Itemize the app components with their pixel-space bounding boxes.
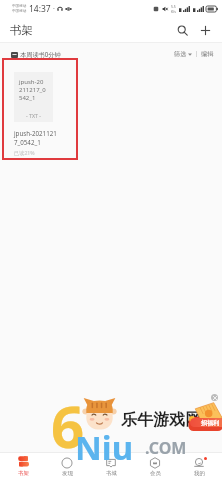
staticText: jpush-2021121 7_0542_1 [14,129,57,147]
staticText: 本周读书0分钟 [20,50,61,58]
button[interactable]: Search [171,19,193,41]
button[interactable]: 发现 [46,457,88,477]
button[interactable]: Promotion gift [186,398,222,434]
staticText: 中国移动 [12,4,27,9]
button[interactable]: 书城 [90,457,132,477]
staticText: K/s [171,9,176,14]
button[interactable]: 书架 [2,456,44,477]
button[interactable]: 我的 [178,457,220,477]
staticText: 乐牛游戏网 [121,410,201,430]
staticText: Niu [75,425,134,470]
staticText: jpush-20 211217_0 542_1 [19,78,46,102]
staticText: 5.5 [171,4,176,9]
button[interactable]: 本周读书0分钟 [11,50,61,58]
staticText: 筛选 [174,50,187,58]
button[interactable]: Add book [194,19,216,41]
staticText: 书架 [18,470,29,477]
button[interactable]: 会员 [134,457,176,477]
staticText: 14:37 [29,3,51,15]
button[interactable]: jpush-20 211217_0 542_1 [14,72,72,156]
staticText: 我的 [194,470,205,477]
staticText: 发现 [62,470,73,477]
staticText: · [53,4,55,14]
button[interactable]: 筛选 [174,50,192,58]
staticText: 书架 [10,23,33,37]
button[interactable]: Close ad [211,394,218,401]
staticText: 招福利 [201,419,219,427]
staticText: 6 [51,386,85,465]
button[interactable]: 编辑 [201,50,214,58]
staticText: 书城 [106,470,117,477]
staticText: - TXT - [26,112,41,119]
staticText: 会员 [150,470,161,477]
staticText: 已读21% [14,149,35,156]
staticText: .COM [145,437,187,459]
staticText: 中国移动 [12,9,27,14]
